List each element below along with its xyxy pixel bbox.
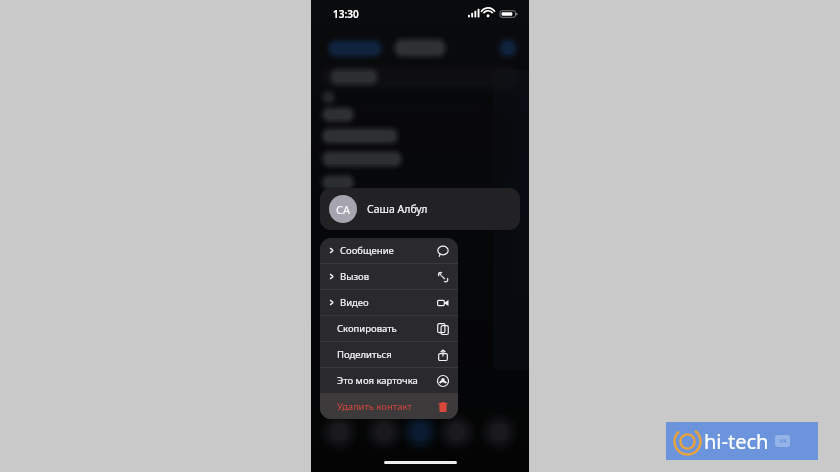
button[interactable]: CA	[320, 188, 520, 230]
button[interactable]: Видео	[320, 290, 458, 315]
button[interactable]: Вызов	[320, 264, 458, 289]
button[interactable]: Сообщение	[320, 238, 458, 263]
staticText: Это моя карточка	[337, 374, 437, 387]
button[interactable]: Удалить контакт	[320, 394, 458, 419]
staticText: CA	[336, 202, 350, 217]
staticText: Скопировать	[337, 322, 437, 335]
staticText: Вызов	[340, 270, 437, 283]
staticText: 13:30	[333, 7, 359, 21]
staticText: hi-tech	[704, 428, 769, 455]
staticText: Поделиться	[337, 348, 437, 361]
staticText: Видео	[340, 296, 437, 309]
button[interactable]: Это моя карточка	[320, 368, 458, 393]
staticText: VK	[779, 437, 787, 445]
staticText: Сообщение	[340, 244, 437, 257]
button[interactable]: Скопировать	[320, 316, 458, 341]
staticText: Саша Албул	[367, 202, 428, 216]
staticText: Удалить контакт	[337, 400, 437, 413]
button[interactable]: Поделиться	[320, 342, 458, 367]
